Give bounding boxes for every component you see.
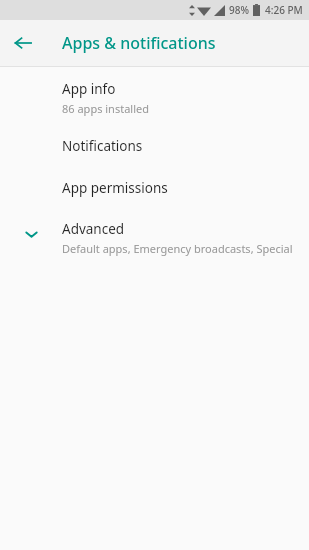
button[interactable]: Notifications	[0, 137, 309, 157]
staticText: Advanced	[62, 220, 125, 238]
button[interactable]: Advanced	[0, 220, 309, 256]
staticText: Default apps, Emergency broadcasts, Spec…	[62, 241, 299, 256]
staticText: Apps & notifications	[62, 32, 216, 54]
staticText: App permissions	[62, 179, 168, 197]
staticText: App info	[62, 80, 116, 98]
staticText: 4:26 PM	[265, 3, 303, 17]
button[interactable]: App permissions	[0, 179, 309, 199]
staticText: 86 apps installed	[62, 101, 149, 116]
button[interactable]: App info	[0, 80, 309, 116]
staticText: Notifications	[62, 137, 143, 155]
button[interactable]: Back	[0, 20, 46, 66]
staticText: 98%	[229, 3, 249, 17]
